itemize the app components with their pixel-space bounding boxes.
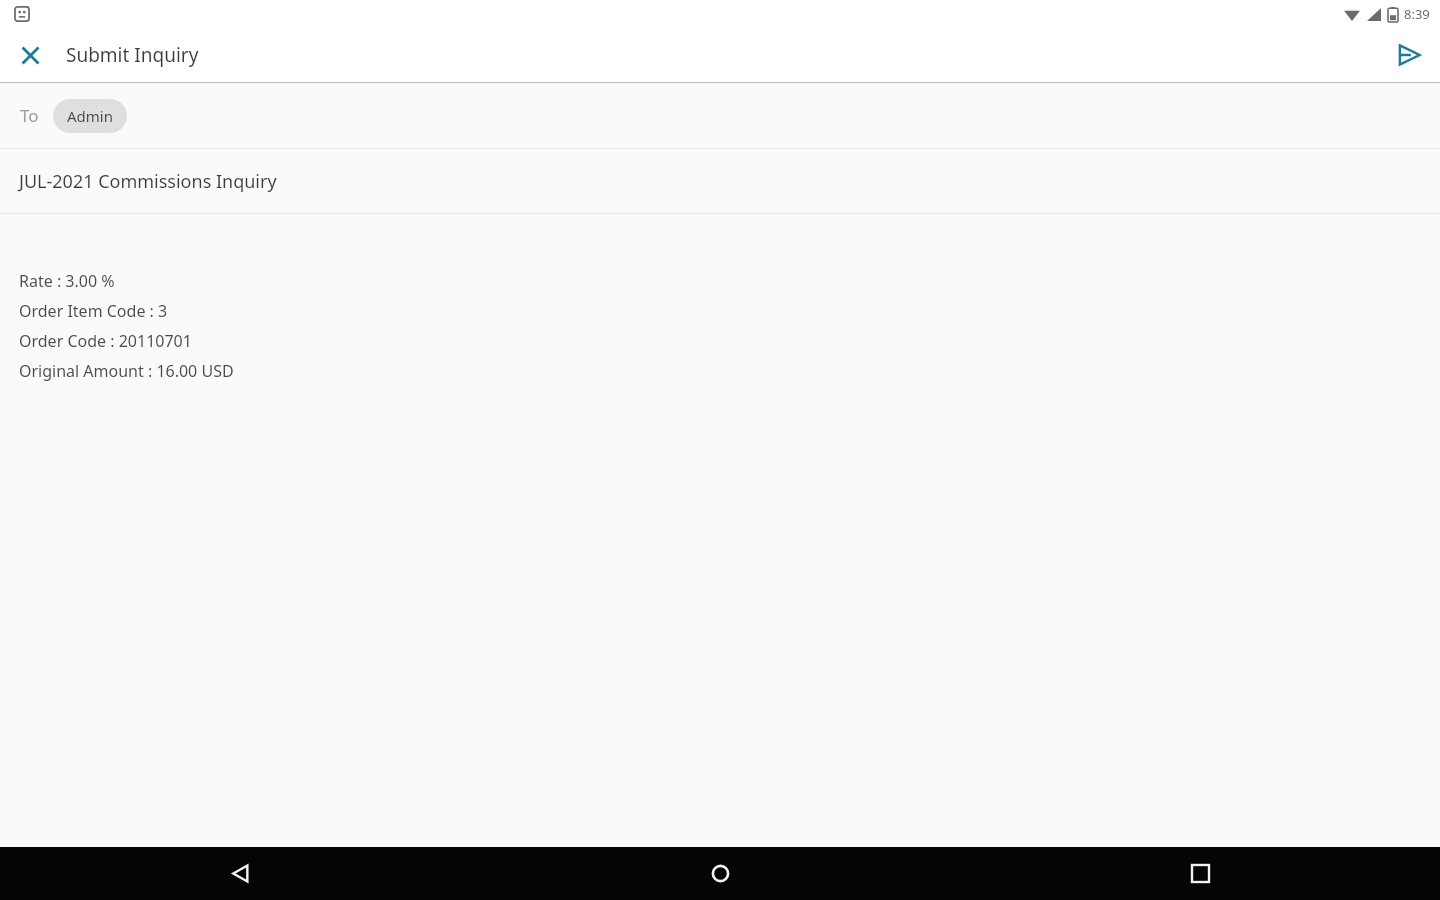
staticText: Admin [67, 106, 113, 126]
staticText: Order Item Code : 3 [19, 300, 168, 322]
staticText: To [20, 104, 39, 127]
button[interactable]: Close [8, 33, 52, 77]
staticText: 8:39 [1404, 5, 1430, 23]
button[interactable]: To [0, 83, 1440, 148]
button[interactable]: JUL-2021 Commissions Inquiry [0, 149, 1440, 213]
button[interactable]: Rate : 3.00 % [0, 214, 1440, 847]
staticText: JUL-2021 Commissions Inquiry [19, 169, 277, 194]
staticText: Rate : 3.00 % [19, 270, 115, 292]
staticText: Submit Inquiry [66, 42, 199, 68]
staticText: Original Amount : 16.00 USD [19, 360, 234, 382]
button[interactable]: Home [480, 847, 960, 900]
button[interactable]: Send [1386, 32, 1432, 78]
staticText: Order Code : 20110701 [19, 330, 192, 352]
button[interactable]: Back [0, 847, 480, 900]
button[interactable]: Admin [53, 99, 127, 133]
button[interactable]: Recent apps [960, 847, 1440, 900]
